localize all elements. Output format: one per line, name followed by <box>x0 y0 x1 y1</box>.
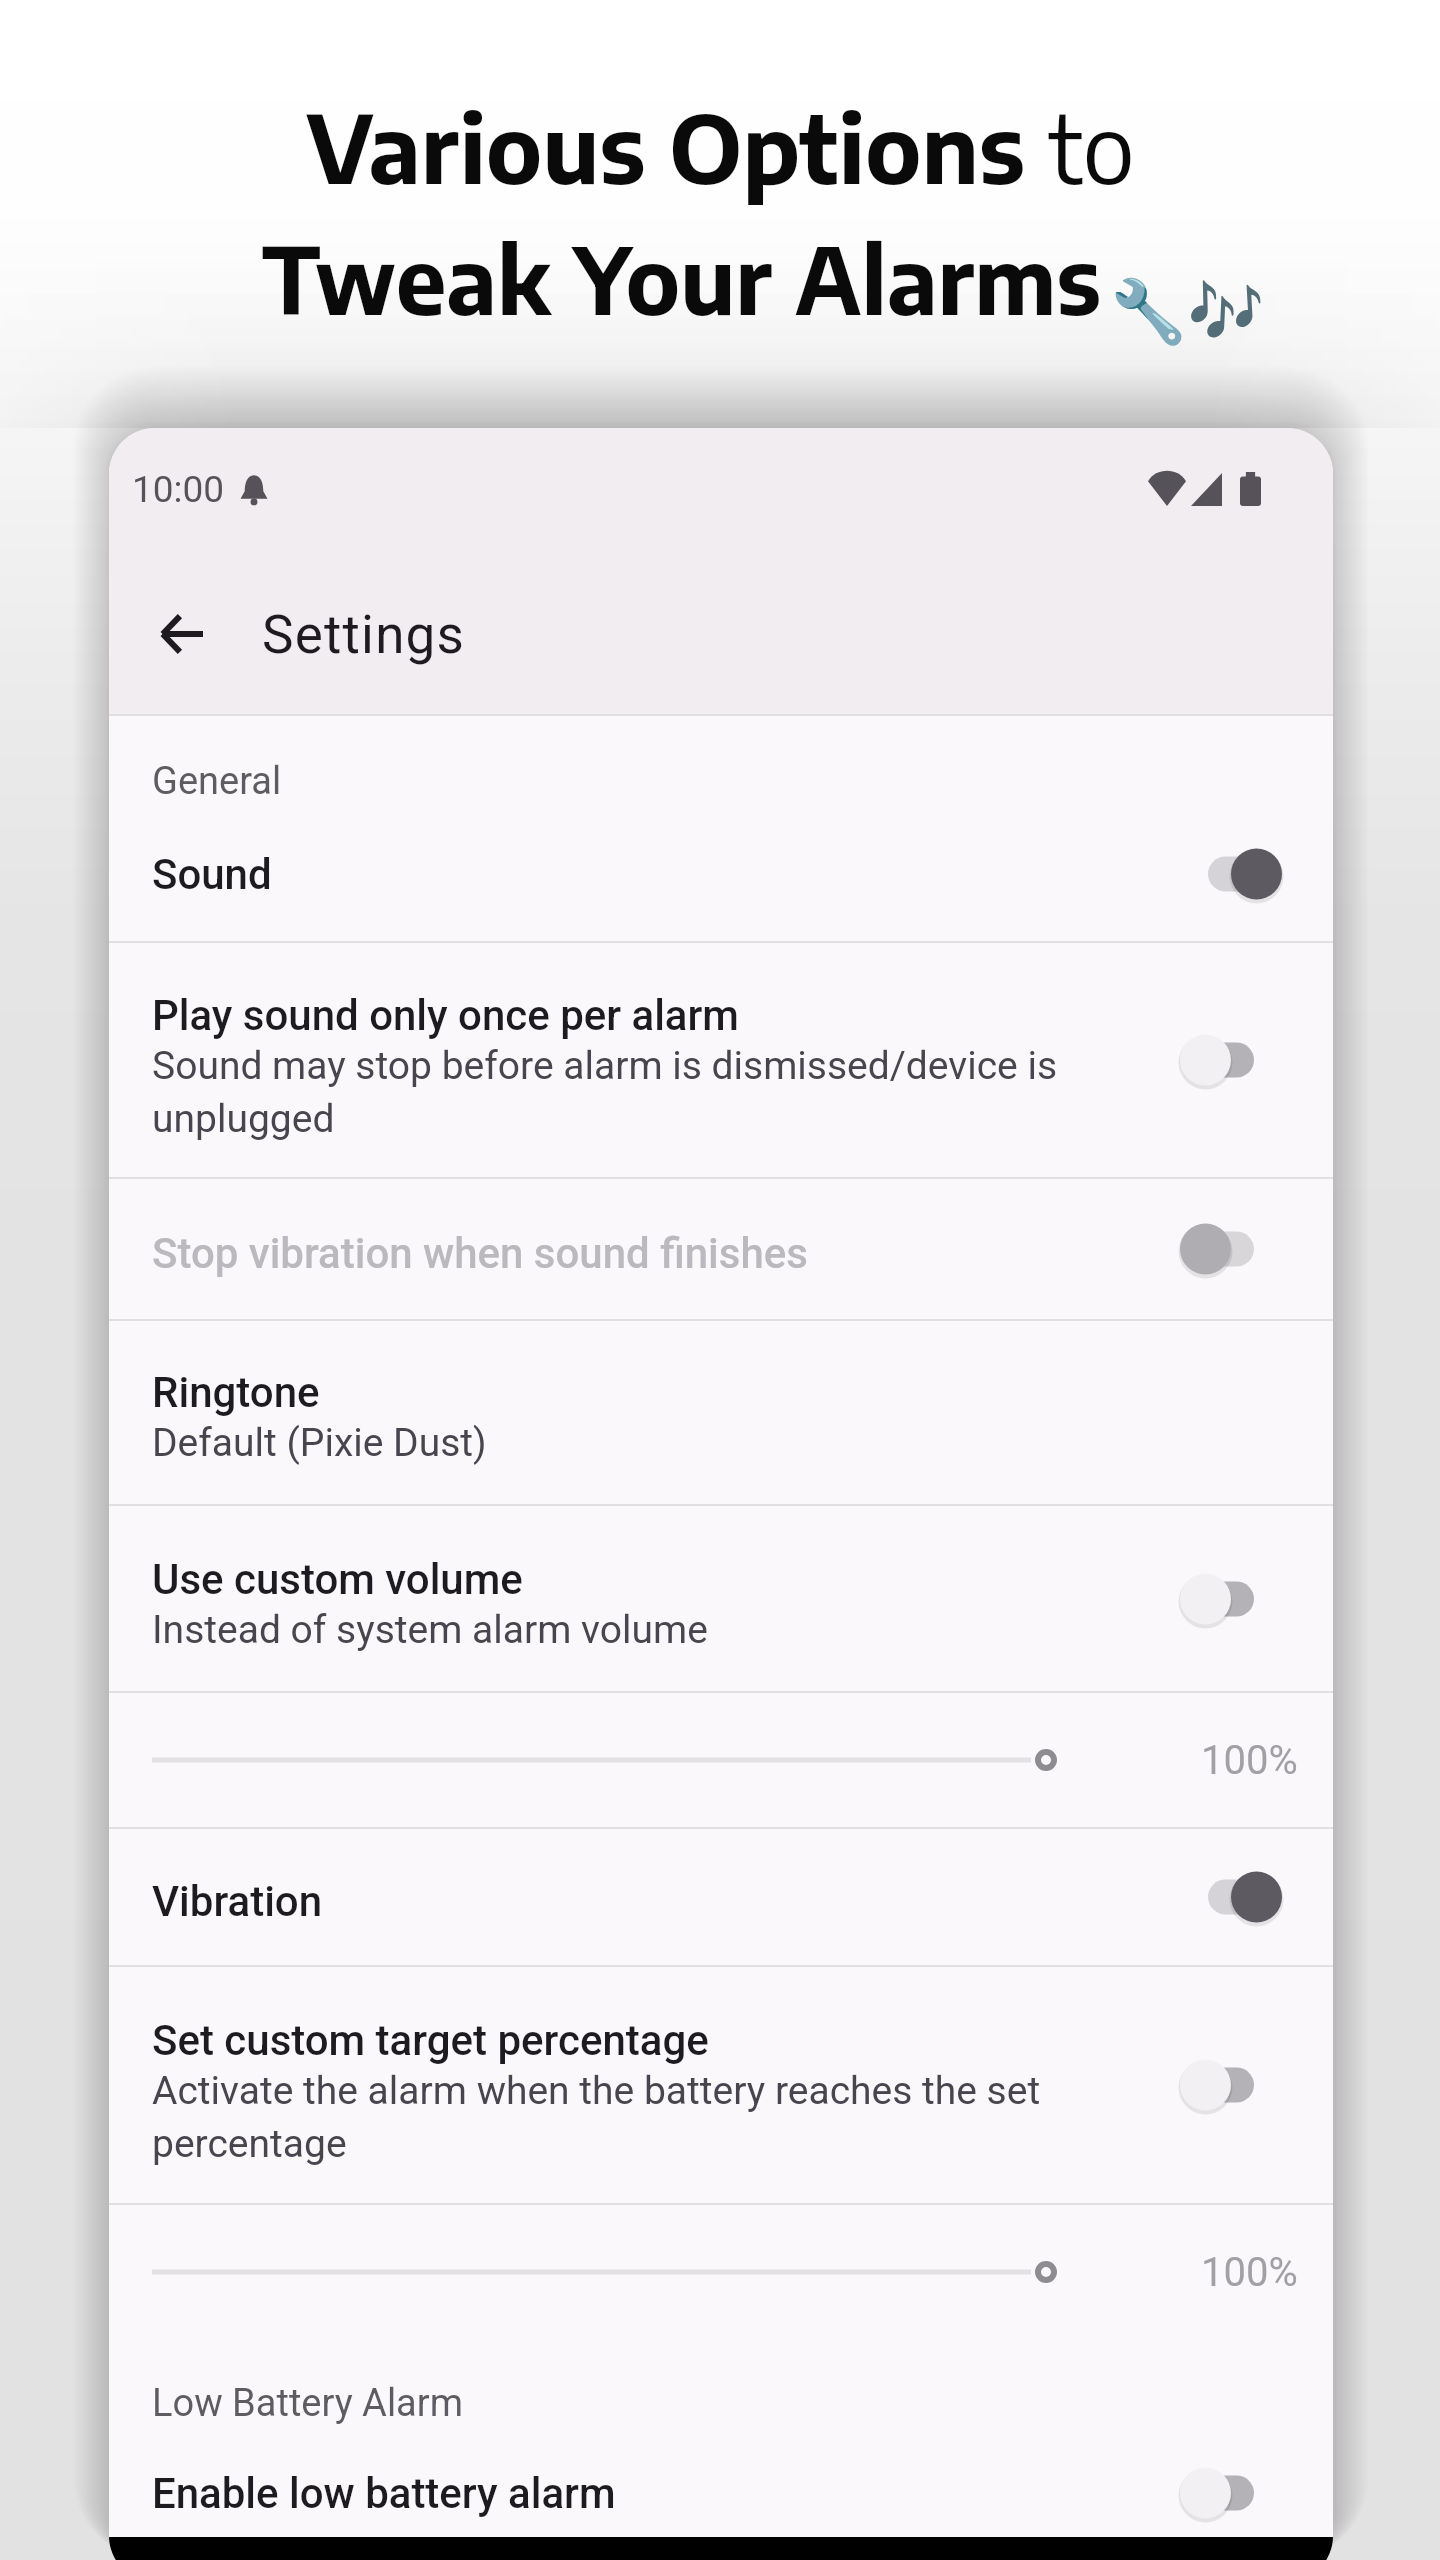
staticText: 10:00 <box>132 468 225 511</box>
staticText: Low Battery Alarm <box>152 2381 463 2426</box>
button[interactable]: Toggle <box>1179 1217 1283 1281</box>
button[interactable]: Use custom volume <box>109 1506 1333 1691</box>
button[interactable]: Toggle <box>1179 1865 1283 1929</box>
staticText: Set custom target percentage <box>152 2016 709 2065</box>
button[interactable]: Toggle <box>1179 1567 1283 1631</box>
button[interactable]: Volume slider <box>152 1738 1055 1782</box>
button[interactable]: Toggle <box>1179 2461 1283 2525</box>
staticText: Tweak Your Alarms <box>262 221 1101 335</box>
staticText: Instead of system alarm volume <box>152 1607 708 1653</box>
staticText: Activate the alarm when the battery reac… <box>152 2068 1097 2166</box>
staticText: Use custom volume <box>152 1555 523 1604</box>
staticText: Stop vibration when sound finishes <box>152 1229 808 1278</box>
staticText: Default (Pixie Dust) <box>152 1420 487 1466</box>
staticText: Ringtone <box>152 1368 320 1417</box>
staticText: Play sound only once per alarm <box>152 991 739 1040</box>
button[interactable]: Toggle <box>1179 842 1283 906</box>
staticText: General <box>152 759 282 804</box>
staticText: 🔧🎶 <box>1094 267 1265 351</box>
button[interactable]: Volume slider <box>152 2250 1055 2294</box>
staticText: Sound <box>152 850 1272 899</box>
staticText: 100% <box>1201 1737 1298 1784</box>
staticText: 100% <box>1201 2249 1298 2296</box>
button[interactable]: Stop vibration when sound finishes <box>109 1179 1333 1319</box>
button[interactable]: Toggle <box>1179 2053 1283 2117</box>
staticText: Settings <box>262 604 466 666</box>
button[interactable]: Set custom target percentage <box>109 1967 1333 2203</box>
button[interactable]: Enable low battery alarm <box>109 2447 1333 2539</box>
button[interactable]: Ringtone <box>109 1321 1333 1504</box>
button[interactable]: Sound <box>109 814 1333 934</box>
button[interactable]: Toggle <box>1179 1028 1283 1092</box>
button[interactable]: Back <box>131 583 233 685</box>
staticText: Sound may stop before alarm is dismissed… <box>152 1043 1097 1141</box>
button[interactable]: Vibration <box>109 1829 1333 1965</box>
staticText: Various Options to <box>306 87 1135 205</box>
button[interactable]: Play sound only once per alarm <box>109 943 1333 1177</box>
staticText: Vibration <box>152 1877 323 1926</box>
staticText: Enable low battery alarm <box>152 2469 1272 2518</box>
